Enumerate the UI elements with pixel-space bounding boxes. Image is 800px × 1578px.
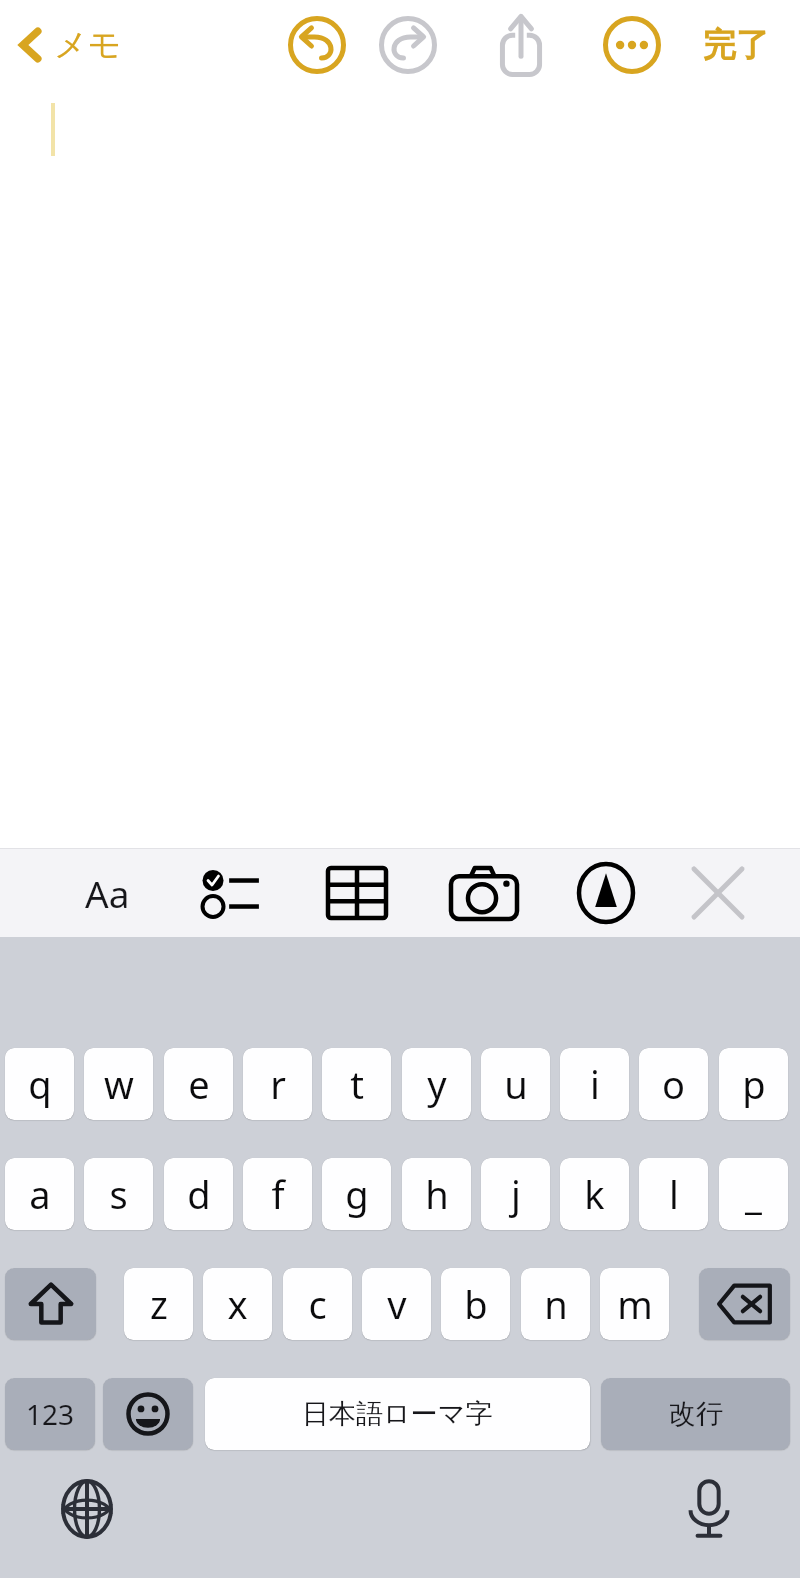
staticText: m — [617, 1278, 653, 1330]
button[interactable]: Undo — [288, 16, 346, 74]
staticText: n — [544, 1278, 568, 1330]
button[interactable]: h — [402, 1158, 471, 1230]
staticText: u — [504, 1058, 528, 1110]
staticText: k — [584, 1168, 605, 1220]
button[interactable]: Checklist — [187, 860, 275, 926]
button[interactable]: o — [639, 1048, 708, 1120]
button[interactable]: 完了 — [686, 14, 786, 76]
button[interactable]: Delete — [699, 1268, 790, 1340]
button[interactable]: More — [603, 16, 661, 74]
button[interactable]: r — [243, 1048, 312, 1120]
button[interactable]: Switch keyboard — [50, 1472, 124, 1546]
button[interactable]: c — [283, 1268, 352, 1340]
button[interactable]: x — [203, 1268, 272, 1340]
staticText: g — [345, 1168, 369, 1220]
button[interactable]: Markup — [562, 860, 650, 926]
button[interactable]: Close — [674, 860, 762, 926]
staticText: d — [187, 1168, 211, 1220]
staticText: b — [464, 1278, 488, 1330]
staticText: a — [29, 1168, 51, 1220]
staticText: l — [669, 1168, 679, 1220]
staticText: o — [662, 1058, 685, 1110]
button[interactable]: メモ — [14, 14, 122, 76]
button[interactable]: Share — [492, 10, 550, 80]
button[interactable]: Dictation — [672, 1472, 746, 1546]
staticText: _ — [745, 1168, 762, 1220]
staticText: q — [28, 1058, 52, 1110]
button[interactable]: i — [560, 1048, 629, 1120]
button[interactable]: Shift — [5, 1268, 96, 1340]
staticText: x — [227, 1278, 248, 1330]
staticText: メモ — [54, 24, 122, 66]
button[interactable]: g — [322, 1158, 391, 1230]
staticText: c — [308, 1278, 327, 1330]
button[interactable]: Table — [313, 860, 401, 926]
button[interactable]: m — [600, 1268, 669, 1340]
staticText: i — [590, 1058, 600, 1110]
staticText: Aa — [85, 868, 130, 918]
button[interactable]: p — [719, 1048, 788, 1120]
staticText: 完了 — [703, 24, 769, 66]
button[interactable]: y — [402, 1048, 471, 1120]
staticText: 123 — [26, 1395, 75, 1433]
button[interactable]: a — [5, 1158, 74, 1230]
staticText: v — [387, 1278, 407, 1330]
button[interactable]: k — [560, 1158, 629, 1230]
button[interactable]: t — [322, 1048, 391, 1120]
button[interactable]: 日本語ローマ字 — [205, 1378, 590, 1450]
button[interactable]: v — [362, 1268, 431, 1340]
button[interactable]: Redo — [379, 16, 437, 74]
button[interactable]: f — [243, 1158, 312, 1230]
staticText: w — [104, 1058, 134, 1110]
staticText: p — [742, 1058, 766, 1110]
button[interactable]: Aa — [63, 860, 151, 926]
button[interactable]: d — [164, 1158, 233, 1230]
staticText: y — [427, 1058, 447, 1110]
button[interactable]: s — [84, 1158, 153, 1230]
staticText: f — [271, 1168, 285, 1220]
staticText: 日本語ローマ字 — [302, 1397, 493, 1431]
button[interactable]: Emoji — [103, 1378, 193, 1450]
staticText: e — [188, 1058, 210, 1110]
staticText: r — [270, 1058, 286, 1110]
staticText: z — [150, 1278, 168, 1330]
button[interactable]: n — [521, 1268, 590, 1340]
button[interactable]: 123 — [5, 1378, 95, 1450]
button[interactable]: l — [639, 1158, 708, 1230]
staticText: 改行 — [669, 1397, 723, 1431]
button[interactable]: j — [481, 1158, 550, 1230]
button[interactable]: q — [5, 1048, 74, 1120]
button[interactable]: 改行 — [601, 1378, 790, 1450]
staticText: t — [350, 1058, 364, 1110]
button[interactable]: Camera — [440, 860, 528, 926]
button[interactable]: _ — [719, 1158, 788, 1230]
staticText: j — [511, 1168, 521, 1220]
staticText: s — [109, 1168, 128, 1220]
button[interactable]: w — [84, 1048, 153, 1120]
button[interactable]: e — [164, 1048, 233, 1120]
button[interactable]: z — [124, 1268, 193, 1340]
staticText: h — [425, 1168, 449, 1220]
button[interactable]: u — [481, 1048, 550, 1120]
button[interactable]: b — [441, 1268, 510, 1340]
